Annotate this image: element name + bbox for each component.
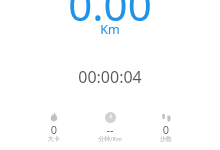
- staticText: 00:00:04: [78, 66, 142, 88]
- staticText: 分钟/Km: [84, 135, 136, 143]
- button[interactable]: Steps: [140, 108, 192, 148]
- staticText: 0: [28, 122, 80, 137]
- button[interactable]: Pace: [84, 108, 136, 148]
- staticText: 步数: [140, 135, 192, 143]
- staticText: 0: [140, 122, 192, 137]
- staticText: 0.00: [68, 0, 152, 33]
- staticText: 大卡: [28, 135, 80, 143]
- staticText: Km: [100, 21, 120, 38]
- staticText: --: [84, 122, 136, 137]
- button[interactable]: Calories: [28, 108, 80, 148]
